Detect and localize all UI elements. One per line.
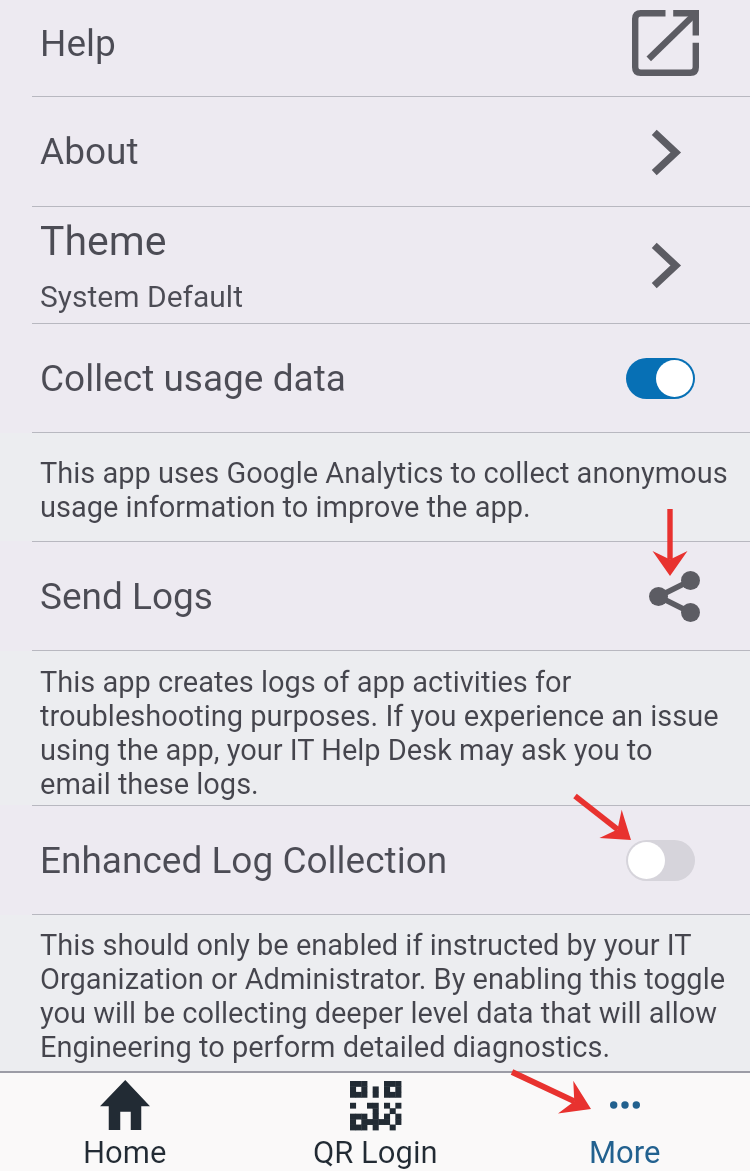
button[interactable]: Theme: [0, 207, 750, 323]
button[interactable]: More: [500, 1073, 750, 1171]
button[interactable]: Open: [651, 116, 679, 188]
button[interactable]: Open Help in browser: [621, 0, 709, 86]
staticText: Home: [83, 1134, 167, 1170]
staticText: QR Login: [313, 1134, 438, 1170]
button[interactable]: Home: [0, 1073, 250, 1171]
button[interactable]: Help: [0, 0, 750, 96]
staticText: Enhanced Log Collection: [40, 839, 448, 882]
button[interactable]: Share logs: [649, 571, 700, 622]
button[interactable]: Open: [651, 229, 679, 301]
staticText: This app creates logs of app activities …: [40, 665, 728, 801]
staticText: Theme: [40, 217, 167, 265]
staticText: About: [40, 130, 139, 173]
button[interactable]: QR Login: [250, 1073, 500, 1171]
button[interactable]: Send Logs: [0, 542, 750, 650]
button[interactable]: Collect usage data: [0, 324, 750, 432]
staticText: Collect usage data: [40, 357, 346, 400]
staticText: This app uses Google Analytics to collec…: [40, 456, 728, 524]
staticText: System Default: [40, 279, 243, 314]
button[interactable]: About: [0, 97, 750, 206]
button[interactable]: Enhanced log collection toggle, off: [626, 840, 695, 881]
staticText: Send Logs: [40, 575, 213, 618]
staticText: Help: [40, 22, 116, 65]
staticText: More: [589, 1134, 661, 1170]
button[interactable]: Collect usage data toggle, on: [626, 358, 695, 399]
button[interactable]: Enhanced Log Collection: [0, 806, 750, 914]
staticText: This should only be enabled if instructe…: [40, 928, 728, 1064]
